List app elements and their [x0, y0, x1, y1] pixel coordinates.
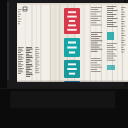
- button[interactable]: Fourth action: [64, 81, 80, 87]
- button[interactable]: Third action: [64, 60, 80, 78]
- button[interactable]: Primary action: [64, 8, 80, 34]
- button[interactable]: App icon: [22, 6, 28, 12]
- button[interactable]: Secondary action: [64, 38, 80, 57]
